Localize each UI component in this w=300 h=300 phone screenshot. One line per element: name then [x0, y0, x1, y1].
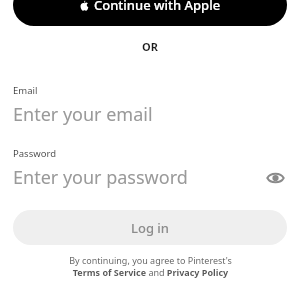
staticText: Email	[13, 84, 38, 97]
staticText: Log in	[131, 219, 169, 237]
button[interactable]: Show password	[263, 166, 287, 190]
staticText: OR	[142, 39, 158, 54]
staticText: Enter your email	[13, 102, 287, 127]
staticText: Password	[13, 147, 56, 160]
staticText: Continue with Apple	[94, 0, 221, 14]
staticText: By continuing, you agree to Pinterest's …	[69, 254, 232, 279]
button[interactable]: Email	[13, 84, 287, 127]
button[interactable]: Password	[13, 147, 287, 190]
button[interactable]: By continuing, you agree to Pinterest's …	[20, 254, 280, 279]
button[interactable]: Log in	[13, 210, 287, 245]
staticText: Enter your password	[13, 165, 263, 190]
button[interactable]: Continue with Apple	[13, 0, 287, 26]
